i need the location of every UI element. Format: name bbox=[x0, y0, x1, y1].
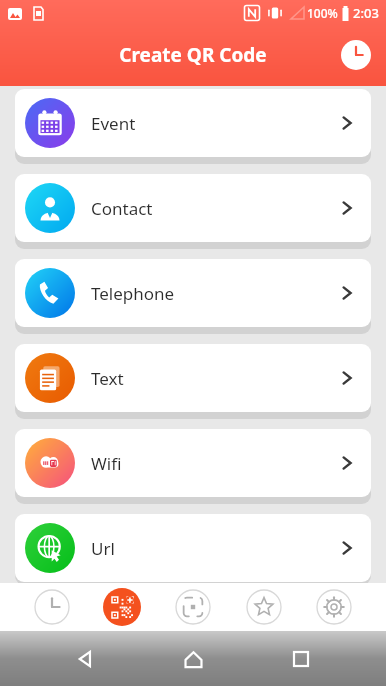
button[interactable]: Text bbox=[15, 344, 371, 412]
button[interactable]: Url bbox=[15, 514, 371, 582]
staticText: 100% bbox=[307, 5, 338, 21]
button[interactable]: Favorites bbox=[245, 588, 283, 626]
button[interactable]: Wifi bbox=[15, 429, 371, 497]
button[interactable]: Recents bbox=[279, 637, 323, 681]
button[interactable]: History bbox=[340, 39, 372, 71]
button[interactable]: Telephone bbox=[15, 259, 371, 327]
staticText: Url bbox=[91, 537, 115, 560]
button[interactable]: Back bbox=[64, 637, 108, 681]
staticText: 2:03 bbox=[353, 4, 379, 22]
button[interactable]: History bbox=[33, 588, 71, 626]
button[interactable]: Home bbox=[171, 637, 215, 681]
staticText: Event bbox=[91, 112, 136, 135]
button[interactable]: Scan bbox=[174, 588, 212, 626]
staticText: Wifi bbox=[91, 452, 122, 475]
staticText: Telephone bbox=[91, 282, 175, 305]
staticText: Create QR Code bbox=[119, 42, 267, 68]
button[interactable]: Event bbox=[15, 89, 371, 157]
button[interactable]: Contact bbox=[15, 174, 371, 242]
staticText: Contact bbox=[91, 197, 153, 220]
button[interactable]: Settings bbox=[315, 588, 353, 626]
staticText: Text bbox=[91, 367, 124, 390]
button[interactable]: Create QR code bbox=[103, 588, 141, 626]
